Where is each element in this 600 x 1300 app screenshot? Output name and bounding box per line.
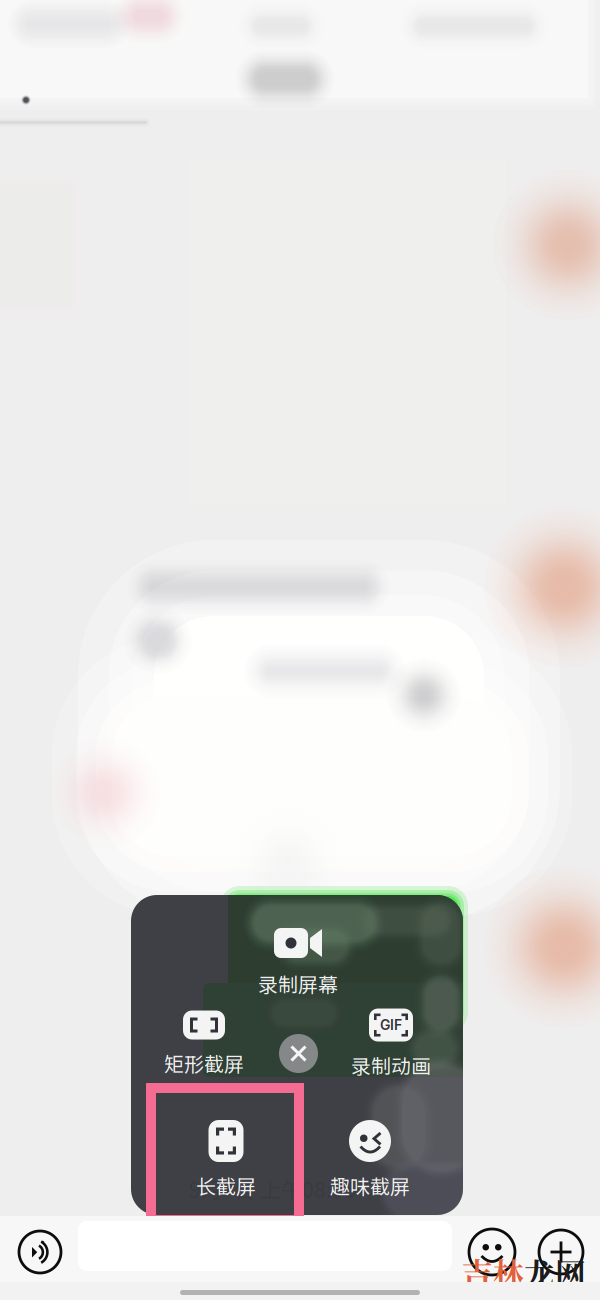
staticText: 9月7日 上午08:05	[189, 1173, 356, 1204]
button[interactable]: 矩形截屏	[144, 999, 264, 1089]
button[interactable]: 表情	[469, 1229, 515, 1275]
staticText: 龙网	[524, 1250, 586, 1294]
button[interactable]: 趣味截屏	[310, 1111, 430, 1209]
button[interactable]: 语音输入	[19, 1231, 61, 1273]
button[interactable]: 更多	[539, 1230, 583, 1274]
staticText: GIF	[380, 1017, 402, 1033]
button[interactable]: 录制屏幕	[238, 917, 358, 1007]
button[interactable]: 长截屏	[166, 1111, 286, 1209]
staticText: 录制屏幕	[258, 969, 338, 998]
button[interactable]: 关闭	[279, 1034, 318, 1073]
button[interactable]: GIF	[331, 999, 451, 1089]
staticText: 趣味截屏	[330, 1171, 410, 1200]
staticText: 吉林	[462, 1250, 524, 1294]
staticText: 矩形截屏	[164, 1048, 244, 1077]
staticText: 长截屏	[196, 1171, 256, 1200]
staticText: 录制动画	[351, 1050, 431, 1079]
